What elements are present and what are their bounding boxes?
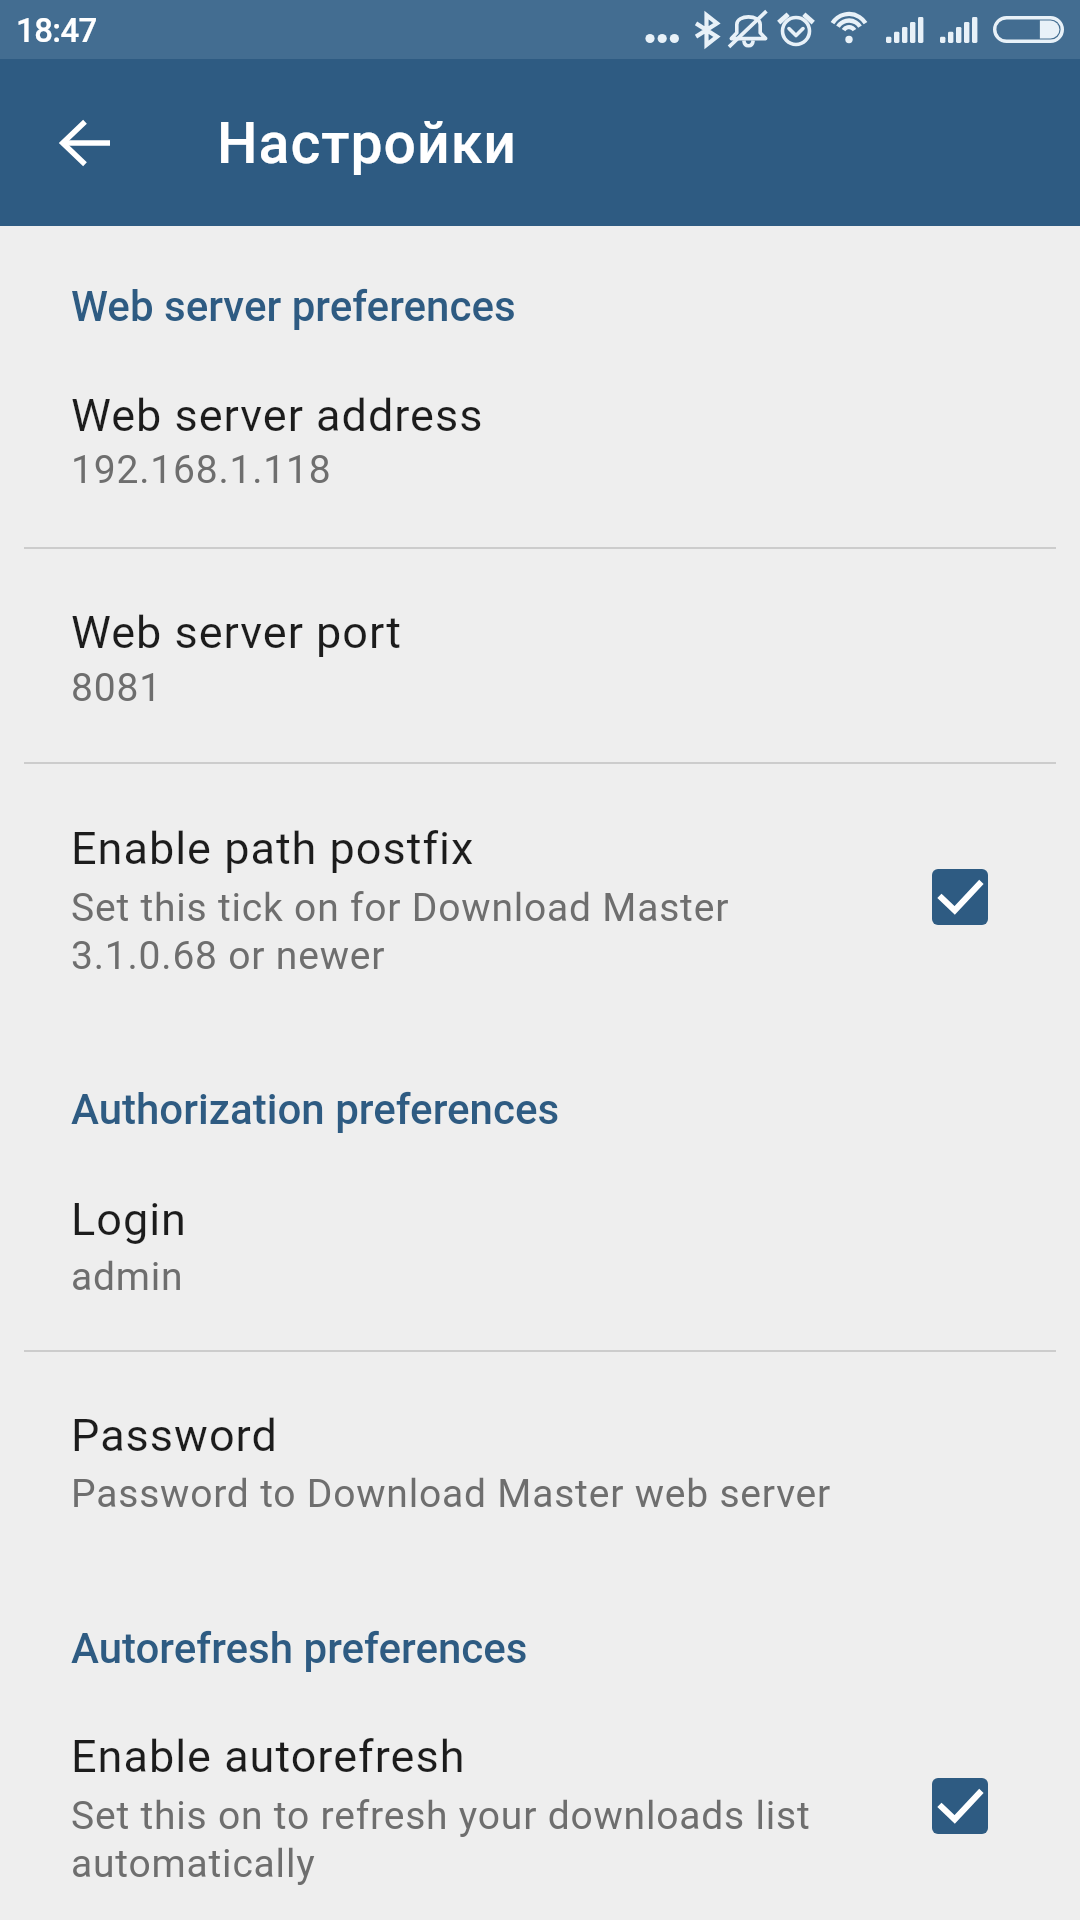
staticText: 192.168.1.118 — [71, 447, 332, 493]
staticText: Set this on to refresh your downloads li… — [71, 1793, 883, 1887]
staticText: Autorefresh preferences — [71, 1624, 528, 1673]
staticText: Authorization preferences — [71, 1085, 560, 1134]
staticText: Enable path postfix — [71, 822, 475, 875]
staticText: Web server port — [71, 606, 403, 659]
staticText: admin — [71, 1254, 184, 1300]
staticText: Set this tick on for Download Master 3.1… — [71, 885, 883, 979]
staticText: Web server address — [71, 389, 484, 442]
button[interactable]: Navigate up — [37, 95, 133, 191]
staticText: 18:47 — [16, 11, 97, 50]
button[interactable]: Enable autorefresh — [0, 1695, 1080, 1920]
button[interactable]: Web server address — [0, 355, 1080, 547]
staticText: Web server preferences — [71, 282, 516, 331]
button[interactable]: Enable autorefresh — [932, 1778, 988, 1834]
staticText: Password to Download Master web server — [71, 1471, 832, 1517]
button[interactable]: Web server port — [0, 549, 1080, 762]
button[interactable]: Enable path postfix — [0, 764, 1080, 1020]
button[interactable]: Enable path postfix — [932, 869, 988, 925]
button[interactable]: Login — [0, 1158, 1080, 1350]
button[interactable]: Password — [0, 1352, 1080, 1560]
staticText: Настройки — [217, 110, 518, 177]
staticText: Password — [71, 1409, 278, 1462]
staticText: 8081 — [71, 665, 162, 711]
staticText: Enable autorefresh — [71, 1730, 466, 1783]
staticText: Login — [71, 1193, 187, 1246]
